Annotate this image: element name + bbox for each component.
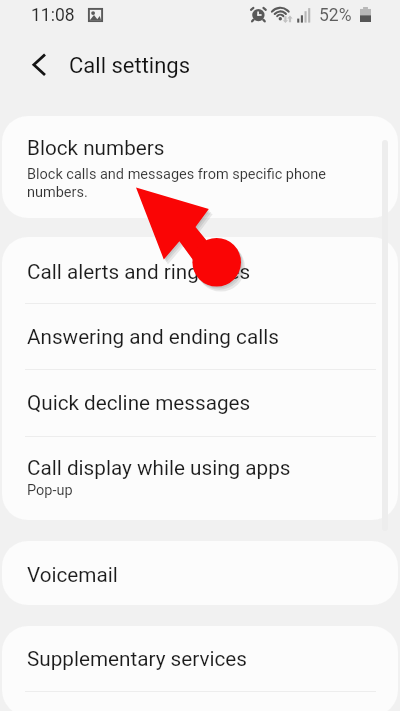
staticText: Voicemail (27, 563, 118, 587)
staticText: 52% (319, 5, 352, 26)
staticText: 11:08 (31, 5, 75, 26)
button[interactable]: Call display while using apps (2, 437, 398, 520)
staticText: Block numbers (27, 136, 165, 160)
staticText: Call settings (69, 53, 191, 79)
button[interactable]: Supplementary services (2, 626, 398, 692)
staticText: Supplementary services (27, 647, 247, 671)
button[interactable]: Call alerts and ringtones (2, 237, 398, 304)
button[interactable]: Answering and ending calls (2, 304, 398, 370)
button[interactable]: Voicemail (2, 541, 398, 605)
staticText: Quick decline messages (27, 391, 251, 415)
button[interactable]: Quick decline messages (2, 370, 398, 437)
button[interactable]: Back (16, 42, 62, 88)
staticText: Call display while using apps (27, 456, 291, 480)
button[interactable]: Block numbers (2, 116, 398, 218)
staticText: Call alerts and ringtones (27, 260, 251, 284)
staticText: Pop-up (27, 482, 73, 499)
staticText: Answering and ending calls (27, 325, 279, 349)
staticText: Block calls and messages from specific p… (27, 166, 336, 201)
